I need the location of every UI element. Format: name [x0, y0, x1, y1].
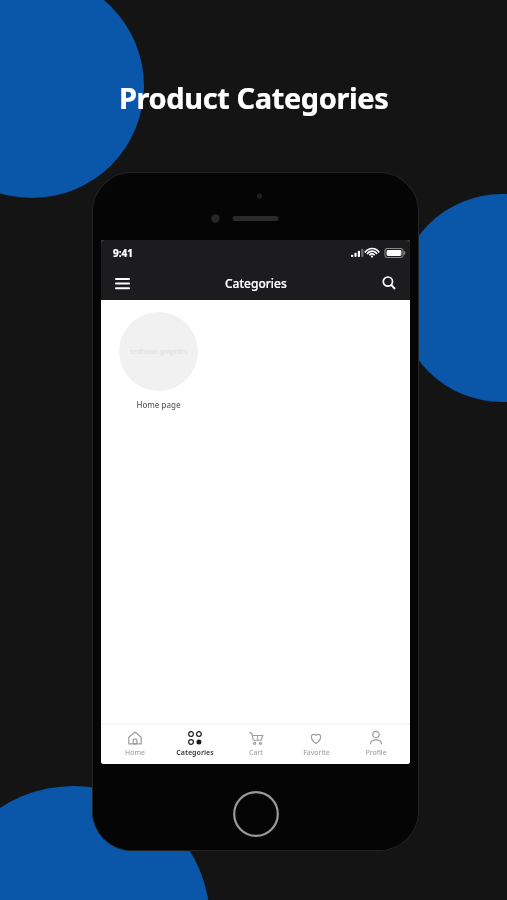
staticText: Product Categories	[119, 78, 389, 117]
button[interactable]: Home	[109, 728, 161, 761]
staticText: Home page	[136, 399, 181, 410]
staticText: 9:41	[113, 246, 133, 260]
button[interactable]: Favorite	[290, 728, 342, 761]
button[interactable]: Categories	[169, 728, 221, 761]
staticText: Categories	[225, 275, 287, 291]
staticText: Home	[125, 748, 145, 758]
button[interactable]: Menu	[109, 270, 135, 296]
button[interactable]: redhead.graphics	[117, 312, 199, 410]
button[interactable]: Profile	[350, 728, 402, 761]
staticText: redhead.graphics	[130, 347, 188, 357]
staticText: Profile	[365, 748, 387, 758]
button[interactable]: Cart	[230, 728, 282, 761]
staticText: Categories	[176, 748, 214, 758]
button[interactable]: Search	[376, 270, 402, 296]
staticText: Favorite	[303, 748, 330, 758]
staticText: Cart	[249, 748, 263, 758]
